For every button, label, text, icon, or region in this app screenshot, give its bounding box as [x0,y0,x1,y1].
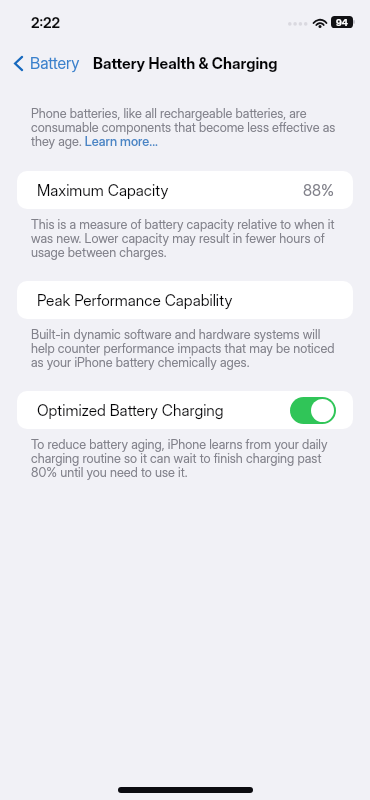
button[interactable]: Maximum Capacity [17,171,353,209]
button[interactable]: Optimized Battery Charging toggle [290,397,336,424]
staticText: To reduce battery aging, iPhone learns f… [31,437,344,480]
staticText: This is a measure of battery capacity re… [31,217,344,260]
staticText: Phone batteries, like all rechargeable b… [31,106,344,149]
staticText: Battery Health & Charging [93,54,278,73]
staticText: Optimized Battery Charging [37,401,224,420]
staticText: Battery [30,54,80,73]
staticText: Maximum Capacity [37,181,169,200]
staticText: Built-in dynamic software and hardware s… [31,327,344,370]
button[interactable]: Peak Performance Capability [17,281,353,319]
staticText: Peak Performance Capability [37,291,233,310]
staticText: 88% [303,181,335,200]
staticText: 2:22 [31,14,61,31]
staticText: 94 [336,17,348,28]
button[interactable]: Battery [0,46,86,77]
